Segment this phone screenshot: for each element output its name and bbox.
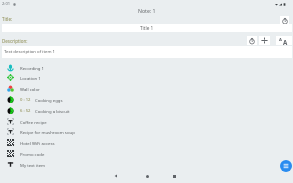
staticText: Coffee recipe: [20, 119, 47, 125]
button[interactable]: Timer: [247, 36, 257, 45]
staticText: 2:01: [2, 1, 11, 7]
button[interactable]: Text format: [276, 36, 292, 45]
button[interactable]: Recording 1: [0, 62, 293, 73]
button[interactable]: Hotel WiFi access: [0, 137, 293, 148]
button[interactable]: Wall color: [0, 83, 293, 94]
button[interactable]: Insert: [259, 36, 270, 45]
staticText: Promo code: [20, 151, 45, 157]
button[interactable]: Coffee recipe: [0, 116, 293, 127]
staticText: 6 : 52: [20, 108, 31, 114]
button[interactable]: Title 1: [2, 24, 292, 32]
staticText: Location 1: [20, 75, 41, 81]
staticText: Note: 1: [138, 7, 156, 14]
staticText: Title:: [2, 16, 13, 22]
button[interactable]: Text description of item 1: [2, 46, 292, 58]
button[interactable]: Home: [138, 169, 156, 183]
button[interactable]: 0 : 12: [0, 94, 293, 105]
button[interactable]: Recents: [165, 169, 183, 183]
button[interactable]: Promo code: [0, 148, 293, 159]
staticText: Cooking eggs: [35, 97, 63, 103]
staticText: A: [279, 37, 282, 43]
staticText: Wall color: [20, 86, 40, 92]
button[interactable]: My text item: [0, 159, 293, 170]
button[interactable]: Recipe for mushroom soup: [0, 126, 293, 137]
staticText: A: [283, 38, 288, 46]
button[interactable]: Timer: [280, 16, 289, 25]
button[interactable]: Show list: [280, 160, 292, 172]
staticText: Text description of item 1: [4, 48, 55, 54]
staticText: 0 : 12: [20, 97, 31, 103]
staticText: Cooking a biscuit: [35, 108, 70, 114]
button[interactable]: Location 1: [0, 72, 293, 83]
staticText: Recipe for mushroom soup: [20, 129, 75, 135]
staticText: Recording 1: [20, 65, 45, 71]
staticText: Description:: [2, 38, 28, 44]
button[interactable]: Back: [107, 169, 125, 183]
staticText: Title 1: [140, 25, 154, 31]
button[interactable]: 6 : 52: [0, 105, 293, 116]
staticText: My text item: [20, 162, 46, 168]
staticText: Hotel WiFi access: [20, 140, 55, 146]
